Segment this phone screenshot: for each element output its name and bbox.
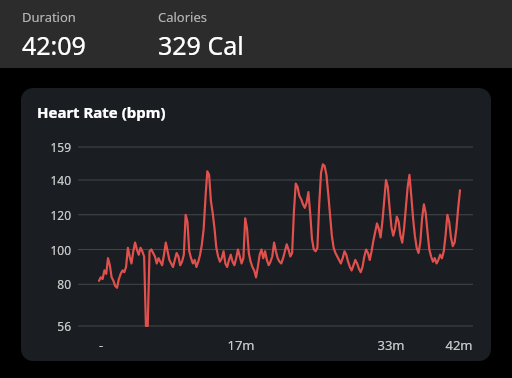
staticText: 17m [221,336,261,354]
staticText: 329 Cal [158,28,244,62]
staticText: 42m [439,336,479,354]
staticText: 42:09 [22,28,86,62]
staticText: 120 [35,207,71,223]
staticText: 100 [35,242,71,258]
staticText: 80 [35,276,71,292]
staticText: Calories [158,8,208,26]
staticText: 159 [35,139,71,155]
staticText: 56 [35,318,71,334]
button[interactable]: Duration [22,0,158,62]
button[interactable]: Calories [158,0,512,62]
staticText: Heart Rate (bpm) [37,102,166,122]
staticText: 140 [35,172,71,188]
staticText: - [81,336,121,354]
staticText: Duration [22,8,76,26]
button[interactable]: Heart Rate (bpm) [21,88,491,361]
staticText: 33m [371,336,411,354]
